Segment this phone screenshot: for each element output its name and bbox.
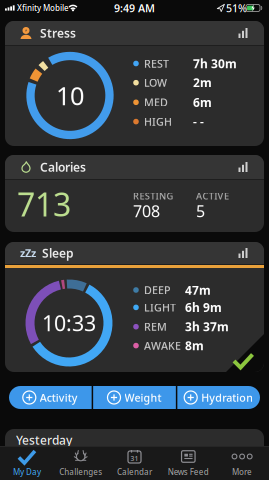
staticText: 713 bbox=[17, 183, 71, 225]
staticText: REST bbox=[144, 56, 169, 71]
staticText: 31 bbox=[130, 454, 138, 463]
staticText: MED bbox=[144, 95, 168, 109]
staticText: HIGH bbox=[144, 114, 172, 129]
staticText: Xfinity Mobile bbox=[17, 3, 69, 13]
staticText: 51% bbox=[226, 1, 247, 15]
staticText: 8m bbox=[185, 338, 204, 353]
staticText: 7h 30m bbox=[193, 55, 237, 71]
staticText: Calories bbox=[40, 159, 86, 175]
staticText: 10:33 bbox=[42, 309, 96, 337]
staticText: RESTING bbox=[133, 190, 173, 202]
staticText: 6m bbox=[193, 94, 212, 110]
button[interactable]: 31 bbox=[109, 446, 159, 480]
button[interactable]: Hydration bbox=[177, 386, 260, 409]
button[interactable]: News Feed bbox=[163, 446, 213, 480]
staticText: DEEP bbox=[144, 283, 171, 297]
button[interactable]: Stress bbox=[5, 21, 264, 146]
button[interactable]: Challenges bbox=[56, 446, 106, 480]
button[interactable]: Calories bbox=[5, 155, 264, 232]
staticText: 9:49 AM bbox=[114, 1, 155, 15]
button[interactable]: Yesterday bbox=[5, 429, 264, 459]
staticText: LOW bbox=[144, 76, 167, 90]
staticText: Hydration bbox=[201, 390, 253, 405]
staticText: Stress bbox=[40, 25, 76, 41]
staticText: News Feed bbox=[168, 467, 209, 477]
staticText: LIGHT bbox=[144, 300, 176, 314]
staticText: 5 bbox=[196, 200, 205, 222]
staticText: - - bbox=[193, 114, 204, 129]
staticText: Sleep bbox=[42, 245, 74, 261]
staticText: Challenges bbox=[59, 467, 102, 477]
staticText: REM bbox=[144, 320, 167, 334]
staticText: 6h 9m bbox=[185, 299, 222, 315]
staticText: Calendar bbox=[117, 467, 152, 477]
staticText: Yesterday bbox=[16, 432, 72, 448]
staticText: My Day bbox=[13, 467, 41, 477]
staticText: 10 bbox=[56, 79, 84, 112]
button[interactable]: Weight bbox=[93, 386, 176, 409]
staticText: More bbox=[232, 467, 252, 477]
button[interactable]: zZz bbox=[5, 242, 264, 372]
staticText: zZz bbox=[20, 246, 36, 260]
staticText: 2m bbox=[193, 75, 212, 91]
staticText: 3h 37m bbox=[185, 319, 229, 335]
button[interactable]: Activity bbox=[9, 386, 92, 409]
staticText: Activity bbox=[40, 390, 78, 405]
staticText: 47m bbox=[185, 282, 211, 298]
staticText: ACTIVE bbox=[196, 190, 229, 202]
staticText: AWAKE bbox=[144, 338, 181, 353]
button[interactable]: More bbox=[217, 446, 267, 480]
staticText: 708 bbox=[133, 200, 160, 222]
staticText: Weight bbox=[124, 390, 161, 405]
button[interactable]: My Day bbox=[2, 446, 52, 480]
